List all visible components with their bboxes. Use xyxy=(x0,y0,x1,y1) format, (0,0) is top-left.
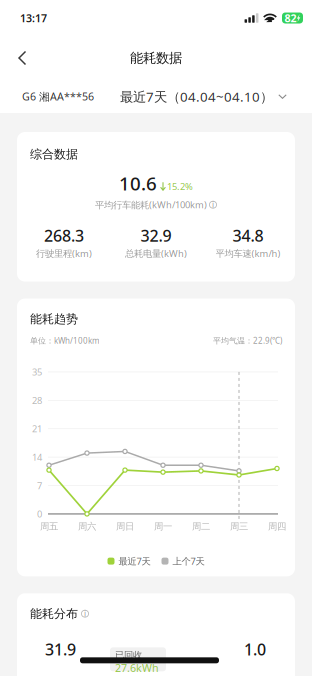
staticText: 10.6 xyxy=(119,171,157,195)
staticText: 最近7天（04.04~04.10） xyxy=(120,88,273,105)
button[interactable]: Back xyxy=(0,42,39,73)
staticText: 268.3 xyxy=(44,225,84,246)
staticText: 能耗趋势 xyxy=(30,312,78,326)
button[interactable]: G6 湘AA***56 xyxy=(22,85,94,108)
staticText: i xyxy=(84,608,86,619)
staticText: 15.2% xyxy=(167,180,193,192)
staticText: 行驶里程(km) xyxy=(36,247,92,260)
staticText: 28 xyxy=(32,394,42,406)
staticText: 单位：kWh/100km xyxy=(30,335,99,346)
staticText: 周四 xyxy=(268,521,286,532)
button[interactable]: 最近7天（04.04~04.10） xyxy=(120,84,287,109)
staticText: 13:17 xyxy=(20,11,47,25)
staticText: 14 xyxy=(32,451,42,463)
staticText: 32.9 xyxy=(140,225,171,246)
staticText: 总耗电量(kWh) xyxy=(125,247,187,260)
staticText: 27.6kWh xyxy=(115,661,159,675)
staticText: i xyxy=(212,199,214,210)
staticText: 周一 xyxy=(154,521,172,532)
staticText: 1.0 xyxy=(244,639,266,660)
staticText: 能耗数据 xyxy=(130,50,182,66)
staticText: 周日 xyxy=(116,521,134,532)
staticText: 平均气温：22.9(°C) xyxy=(213,335,282,346)
staticText: 周六 xyxy=(78,521,96,532)
staticText: 平均车速(km/h) xyxy=(215,247,280,260)
staticText: 31.9 xyxy=(45,639,76,660)
staticText: 最近7天 xyxy=(118,555,150,567)
staticText: 综合数据 xyxy=(30,147,78,162)
staticText: 7 xyxy=(37,479,42,492)
staticText: 21 xyxy=(32,422,42,435)
staticText: 平均行车能耗(kWh/100km) xyxy=(95,198,207,211)
staticText: 周三 xyxy=(230,521,248,532)
staticText: 能耗分布 xyxy=(30,606,78,621)
staticText: G6 湘AA***56 xyxy=(22,89,94,104)
staticText: 0 xyxy=(37,508,42,520)
staticText: 34.8 xyxy=(232,225,263,246)
staticText: 周五 xyxy=(40,521,58,532)
staticText: 已回收 xyxy=(115,649,142,661)
staticText: 35 xyxy=(32,366,42,378)
staticText: 82 xyxy=(284,11,296,25)
staticText: 上个7天 xyxy=(172,555,204,567)
staticText: 周二 xyxy=(192,521,210,532)
